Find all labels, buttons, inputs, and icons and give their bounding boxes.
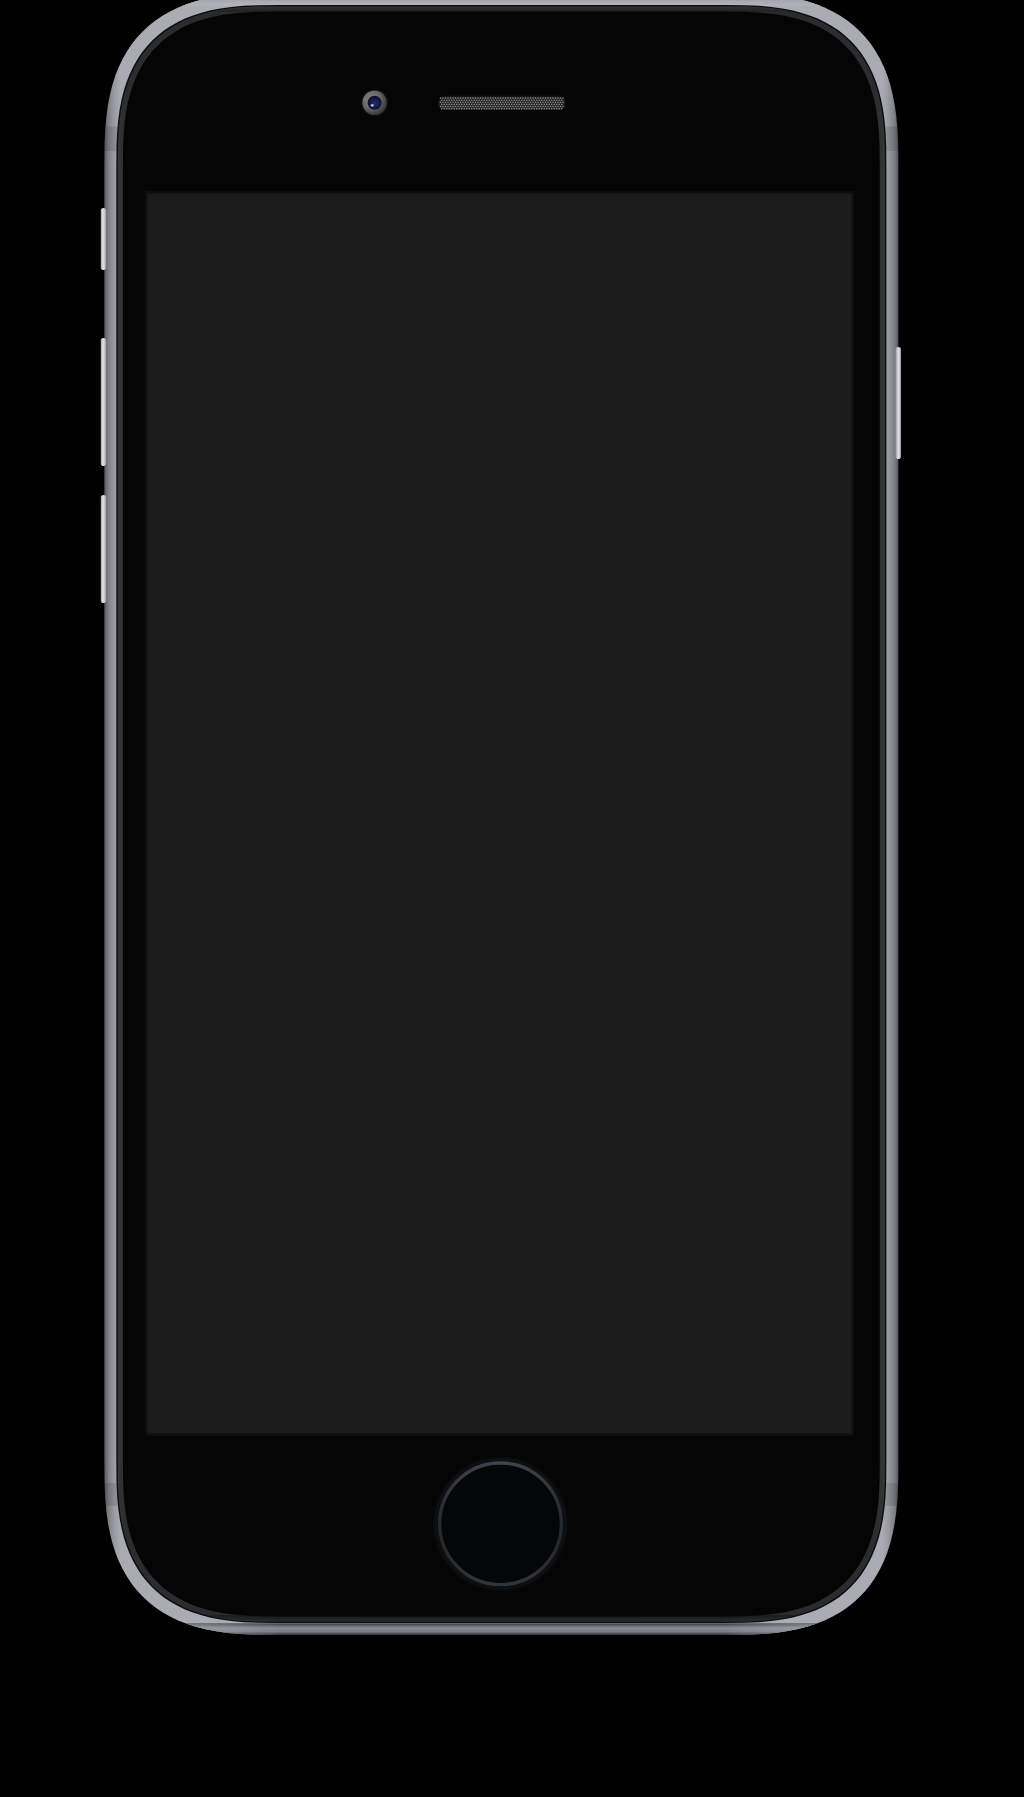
button[interactable]: Volume up (99, 338, 108, 466)
button[interactable]: Front camera (360, 88, 390, 118)
button[interactable]: Ring silent switch (99, 208, 108, 270)
button[interactable]: Earpiece speaker (437, 94, 568, 114)
button[interactable]: Volume down (99, 495, 108, 603)
button[interactable]: Power (894, 347, 903, 459)
button[interactable]: Home button (438, 1461, 564, 1587)
